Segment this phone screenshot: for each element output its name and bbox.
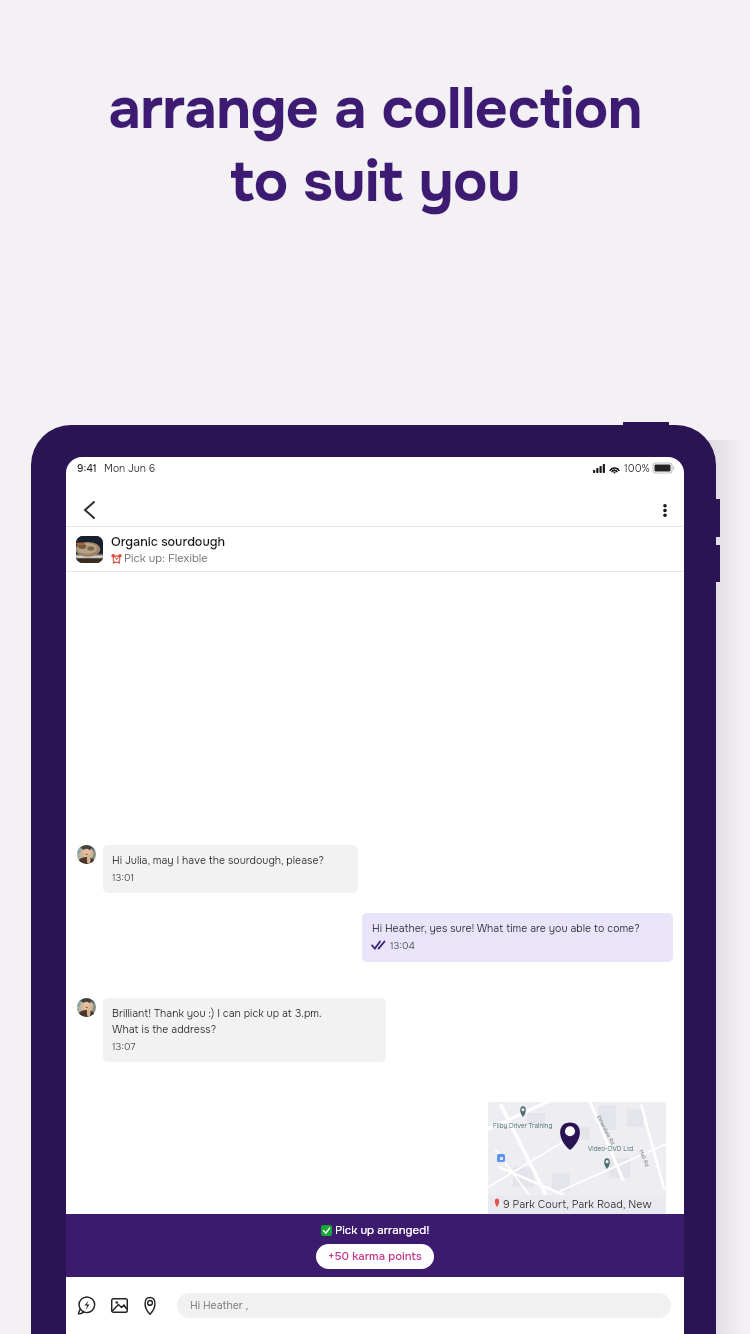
staticText: What is the address?	[112, 1023, 217, 1037]
staticText: Hi Julia, may I have the sourdough, plea…	[112, 854, 324, 868]
staticText: Filby Driver Training	[493, 1122, 553, 1130]
staticText: Hall Rd	[638, 1149, 650, 1168]
staticText: Hi Heather, yes sure! What time are you …	[372, 922, 640, 936]
staticText: 9:41	[77, 462, 97, 475]
staticText: 100%	[624, 462, 650, 475]
staticText: Pick up: Flexible	[124, 551, 208, 565]
button[interactable]: Back	[66, 480, 112, 526]
staticText: Video-DVD Ltd	[588, 1145, 634, 1153]
button[interactable]: Hi Heather ,	[177, 1293, 671, 1318]
staticText: arrange a collection	[108, 72, 642, 145]
button[interactable]: Organic sourdough	[66, 527, 684, 571]
staticText: +50 karma points	[328, 1249, 422, 1264]
button[interactable]: More options	[638, 480, 684, 526]
staticText: 13:01	[112, 871, 134, 883]
staticText: 13:07	[112, 1040, 136, 1052]
staticText: Pick up arranged!	[335, 1223, 430, 1238]
button[interactable]: Etherdale Rd	[488, 1102, 666, 1214]
staticText: 13:04	[390, 939, 415, 951]
staticText: Organic sourdough	[111, 534, 225, 550]
button[interactable]: +50 karma points	[316, 1244, 434, 1269]
staticText: to suit you	[230, 145, 520, 218]
staticText: Etherdale Rd	[595, 1114, 616, 1147]
staticText: Hi Heather ,	[190, 1299, 249, 1313]
staticText: 9 Park Court, Park Road, New	[503, 1198, 652, 1212]
button[interactable]: Add photo	[108, 1294, 131, 1317]
staticText: Mon Jun 6	[104, 462, 156, 475]
staticText: Brilliant! Thank you :) I can pick up at…	[112, 1007, 322, 1021]
button[interactable]: Quick replies	[75, 1294, 98, 1317]
button[interactable]: Share location	[138, 1294, 161, 1317]
